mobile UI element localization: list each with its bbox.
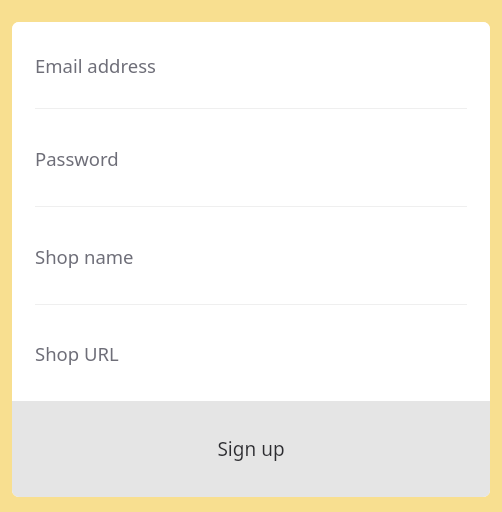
staticText: Password (35, 146, 119, 171)
button[interactable]: Shop name (12, 207, 490, 305)
button[interactable]: Email address (12, 22, 490, 109)
button[interactable]: Sign up (12, 401, 490, 497)
staticText: Shop name (35, 244, 134, 269)
staticText: Sign up (217, 436, 285, 462)
staticText: Email address (35, 53, 156, 78)
button[interactable]: Shop URL (12, 305, 490, 401)
button[interactable]: Password (12, 109, 490, 207)
staticText: Shop URL (35, 341, 119, 366)
